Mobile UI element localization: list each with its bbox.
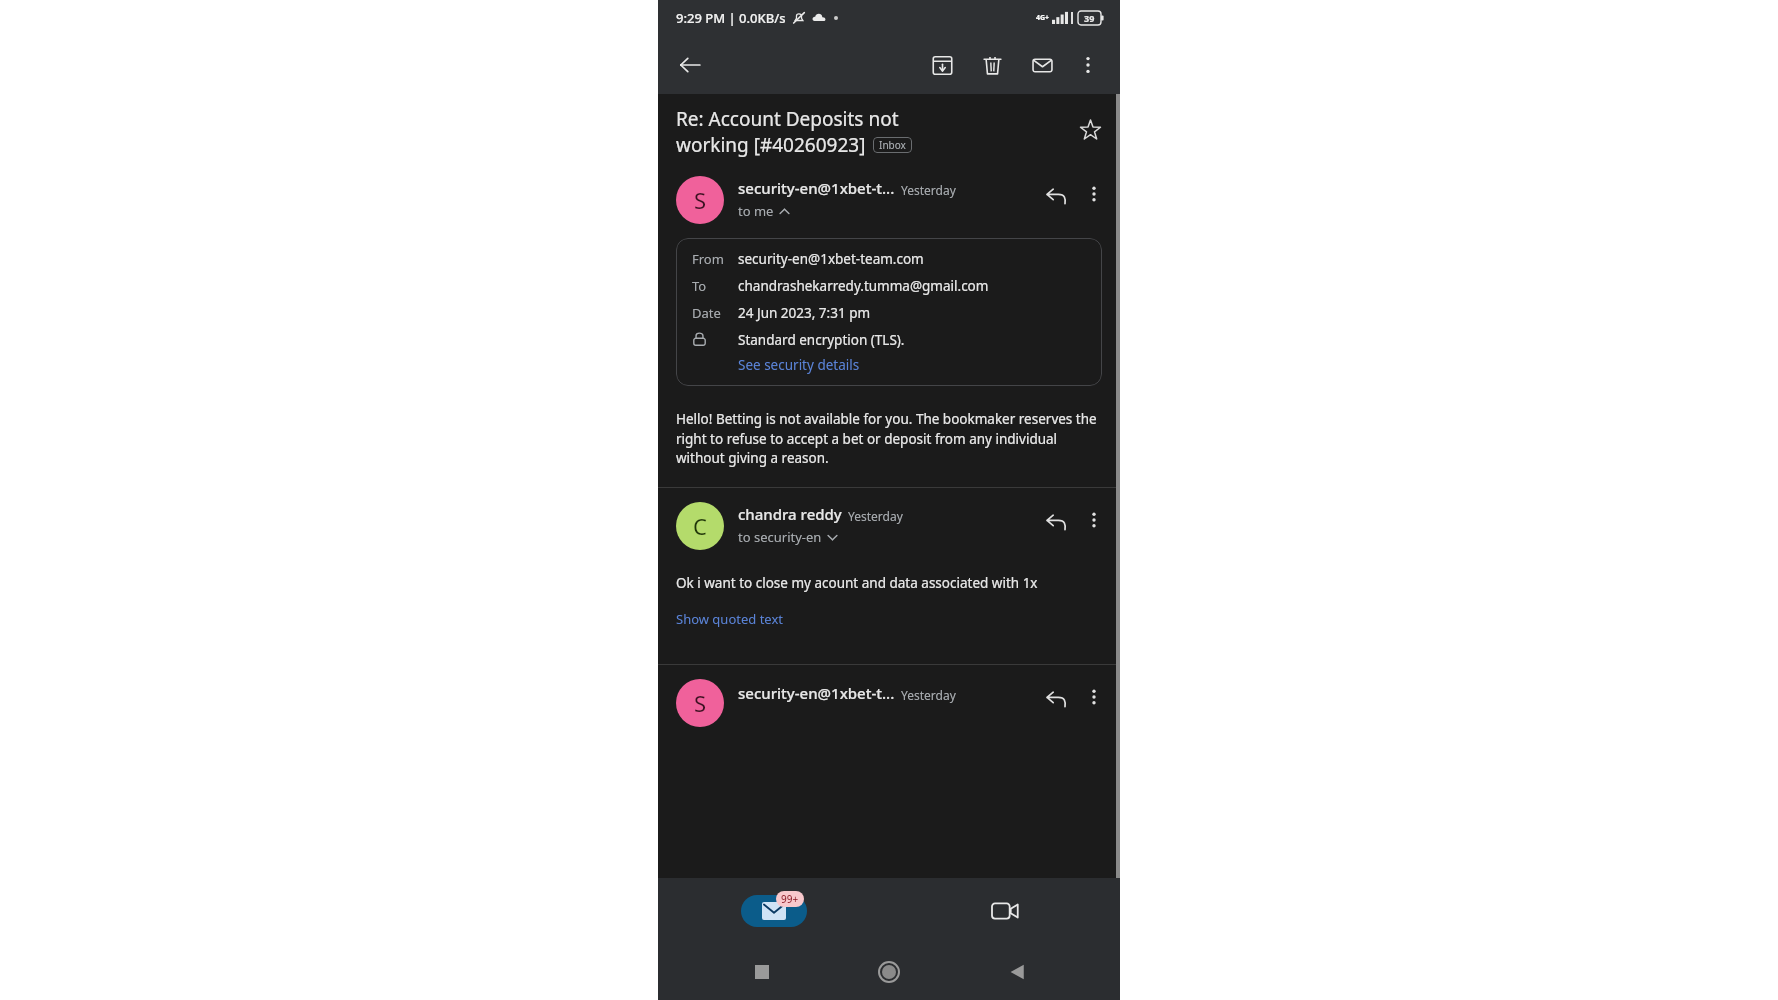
button[interactable]: Reply bbox=[1036, 502, 1076, 542]
staticText: 4G+ bbox=[1036, 13, 1050, 23]
button[interactable]: Back bbox=[668, 43, 712, 87]
staticText: chandrashekarredy.tumma@gmail.com bbox=[738, 277, 989, 295]
staticText: 9:29 PM | 0.0KB/s bbox=[676, 9, 786, 27]
staticText: S bbox=[694, 688, 707, 718]
staticText: Re: Account Deposits not bbox=[676, 106, 899, 132]
button[interactable]: Mark as unread bbox=[1020, 43, 1064, 87]
button[interactable]: S bbox=[676, 176, 724, 224]
button[interactable]: From bbox=[676, 238, 1102, 386]
staticText: Yesterday bbox=[901, 182, 956, 198]
button[interactable]: Reply bbox=[1036, 679, 1076, 719]
button[interactable]: Archive bbox=[920, 43, 964, 87]
button[interactable]: More options bbox=[1076, 502, 1112, 538]
staticText: chandra reddy bbox=[738, 504, 842, 524]
button[interactable]: C bbox=[676, 502, 724, 550]
button[interactable]: Recent apps bbox=[738, 948, 786, 996]
staticText: From bbox=[692, 250, 738, 268]
staticText: S bbox=[694, 185, 707, 215]
staticText: Yesterday bbox=[901, 687, 956, 703]
staticText: to me bbox=[738, 202, 774, 220]
button[interactable]: S bbox=[676, 679, 724, 727]
staticText: working [#40260923] bbox=[676, 132, 866, 158]
button[interactable]: Reply bbox=[1036, 176, 1076, 216]
staticText: C bbox=[693, 511, 707, 541]
staticText: Yesterday bbox=[848, 508, 903, 524]
button[interactable]: More options bbox=[1066, 43, 1110, 87]
staticText: To bbox=[692, 277, 738, 295]
button[interactable]: Back bbox=[993, 948, 1041, 996]
button[interactable]: See security details bbox=[738, 356, 860, 374]
button[interactable]: to security-en bbox=[738, 528, 838, 546]
button[interactable]: Meet bbox=[889, 878, 1120, 944]
button[interactable]: More options bbox=[1076, 176, 1112, 212]
staticText: security-en@1xbet-team.com bbox=[738, 250, 924, 268]
staticText: Inbox bbox=[879, 138, 906, 152]
staticText: Hello! Betting is not available for you.… bbox=[676, 410, 1102, 467]
staticText: security-en@1xbet-t... bbox=[738, 178, 895, 198]
button[interactable]: Inbox bbox=[873, 137, 912, 153]
staticText: Date bbox=[692, 304, 738, 322]
staticText: to security-en bbox=[738, 528, 822, 546]
staticText: Standard encryption (TLS). bbox=[738, 331, 905, 349]
staticText: 24 Jun 2023, 7:31 pm bbox=[738, 304, 871, 322]
button[interactable]: Star bbox=[1070, 110, 1110, 150]
button[interactable]: to me bbox=[738, 202, 790, 220]
button[interactable]: Delete bbox=[970, 43, 1014, 87]
staticText: security-en@1xbet-t... bbox=[738, 683, 895, 703]
staticText: Ok i want to close my acount and data as… bbox=[676, 574, 1038, 592]
button[interactable]: More options bbox=[1076, 679, 1112, 715]
button[interactable]: 99+ bbox=[658, 878, 889, 944]
button[interactable]: Show quoted text bbox=[676, 610, 784, 628]
staticText: 39 bbox=[1084, 12, 1095, 24]
staticText: 99+ bbox=[781, 892, 799, 906]
button[interactable]: Home bbox=[865, 948, 913, 996]
